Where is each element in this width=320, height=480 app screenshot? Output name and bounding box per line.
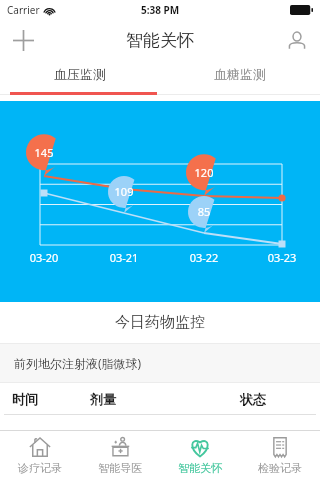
staticText: 血压监测 bbox=[54, 66, 106, 82]
staticText: 5:38 PM bbox=[141, 3, 180, 17]
button[interactable]: 检验记录 bbox=[240, 431, 320, 480]
staticText: 109 bbox=[100, 184, 148, 199]
button[interactable]: 智能导医 bbox=[80, 431, 160, 480]
button[interactable]: Profile bbox=[274, 20, 320, 60]
staticText: 03-20 bbox=[20, 250, 68, 265]
staticText: 检验记录 bbox=[258, 461, 302, 475]
staticText: 智能关怀 bbox=[126, 30, 194, 51]
button[interactable]: 血压监测 bbox=[0, 60, 160, 87]
staticText: 剂量 bbox=[90, 391, 240, 407]
staticText: 时间 bbox=[12, 391, 90, 407]
button[interactable]: 血糖监测 bbox=[160, 60, 320, 87]
staticText: 85 bbox=[180, 204, 228, 219]
staticText: 血糖监测 bbox=[214, 66, 266, 82]
staticText: 今日药物监控 bbox=[115, 313, 205, 332]
staticText: 03-23 bbox=[258, 250, 306, 265]
staticText: 智能关怀 bbox=[178, 461, 222, 475]
staticText: 状态 bbox=[240, 391, 266, 407]
staticText: 03-21 bbox=[100, 250, 148, 265]
button[interactable]: 诊疗记录 bbox=[0, 431, 80, 480]
staticText: 诊疗记录 bbox=[18, 461, 62, 475]
staticText: 03-22 bbox=[180, 250, 228, 265]
button[interactable]: 前列地尔注射液(脂微球) bbox=[0, 344, 320, 382]
staticText: 前列地尔注射液(脂微球) bbox=[14, 355, 142, 371]
button[interactable]: 智能关怀 bbox=[160, 431, 240, 480]
staticText: 145 bbox=[20, 145, 68, 160]
button[interactable]: Add bbox=[0, 20, 46, 60]
staticText: 智能导医 bbox=[98, 461, 142, 475]
staticText: Carrier bbox=[7, 3, 40, 17]
staticText: 120 bbox=[180, 165, 228, 180]
